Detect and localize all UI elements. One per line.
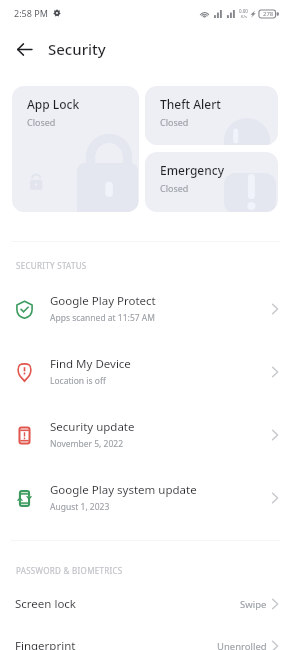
button[interactable]: Security update xyxy=(0,403,291,466)
staticText: 0.00 xyxy=(239,8,248,14)
staticText: Unenrolled xyxy=(217,640,267,650)
button[interactable]: Fingerprint xyxy=(0,625,291,650)
staticText: November 5, 2022 xyxy=(50,438,124,450)
staticText: Theft Alert xyxy=(160,96,221,112)
button[interactable]: Emergency xyxy=(145,152,278,212)
staticText: SECURITY STATUS xyxy=(16,260,87,271)
staticText: 2:58 PM xyxy=(14,7,48,19)
button[interactable]: Theft Alert xyxy=(145,86,278,145)
button[interactable]: Find My Device xyxy=(0,340,291,403)
staticText: Location is off xyxy=(50,375,106,387)
staticText: Screen lock xyxy=(15,596,240,612)
staticText: Find My Device xyxy=(50,356,131,372)
staticText: Closed xyxy=(160,116,189,128)
staticText: Fingerprint xyxy=(15,638,217,650)
staticText: App Lock xyxy=(27,96,80,112)
staticText: Google Play system update xyxy=(50,482,197,498)
button[interactable]: Google Play Protect xyxy=(0,277,291,340)
staticText: Emergency xyxy=(160,162,224,178)
staticText: Security update xyxy=(50,419,135,435)
staticText: Closed xyxy=(27,116,56,128)
staticText: Swipe xyxy=(240,598,267,611)
staticText: Apps scanned at 11:57 AM xyxy=(50,312,155,324)
staticText: 278 xyxy=(263,10,274,18)
button[interactable]: Back xyxy=(8,33,40,65)
button[interactable]: Screen lock xyxy=(0,583,291,625)
staticText: PASSWORD & BIOMETRICS xyxy=(16,565,123,576)
staticText: Security xyxy=(48,39,106,59)
staticText: Google Play Protect xyxy=(50,293,156,309)
staticText: Closed xyxy=(160,182,189,194)
staticText: August 1, 2023 xyxy=(50,501,110,513)
button[interactable]: App Lock xyxy=(12,86,139,212)
staticText: K/s xyxy=(241,14,247,19)
button[interactable]: Google Play system update xyxy=(0,466,291,529)
